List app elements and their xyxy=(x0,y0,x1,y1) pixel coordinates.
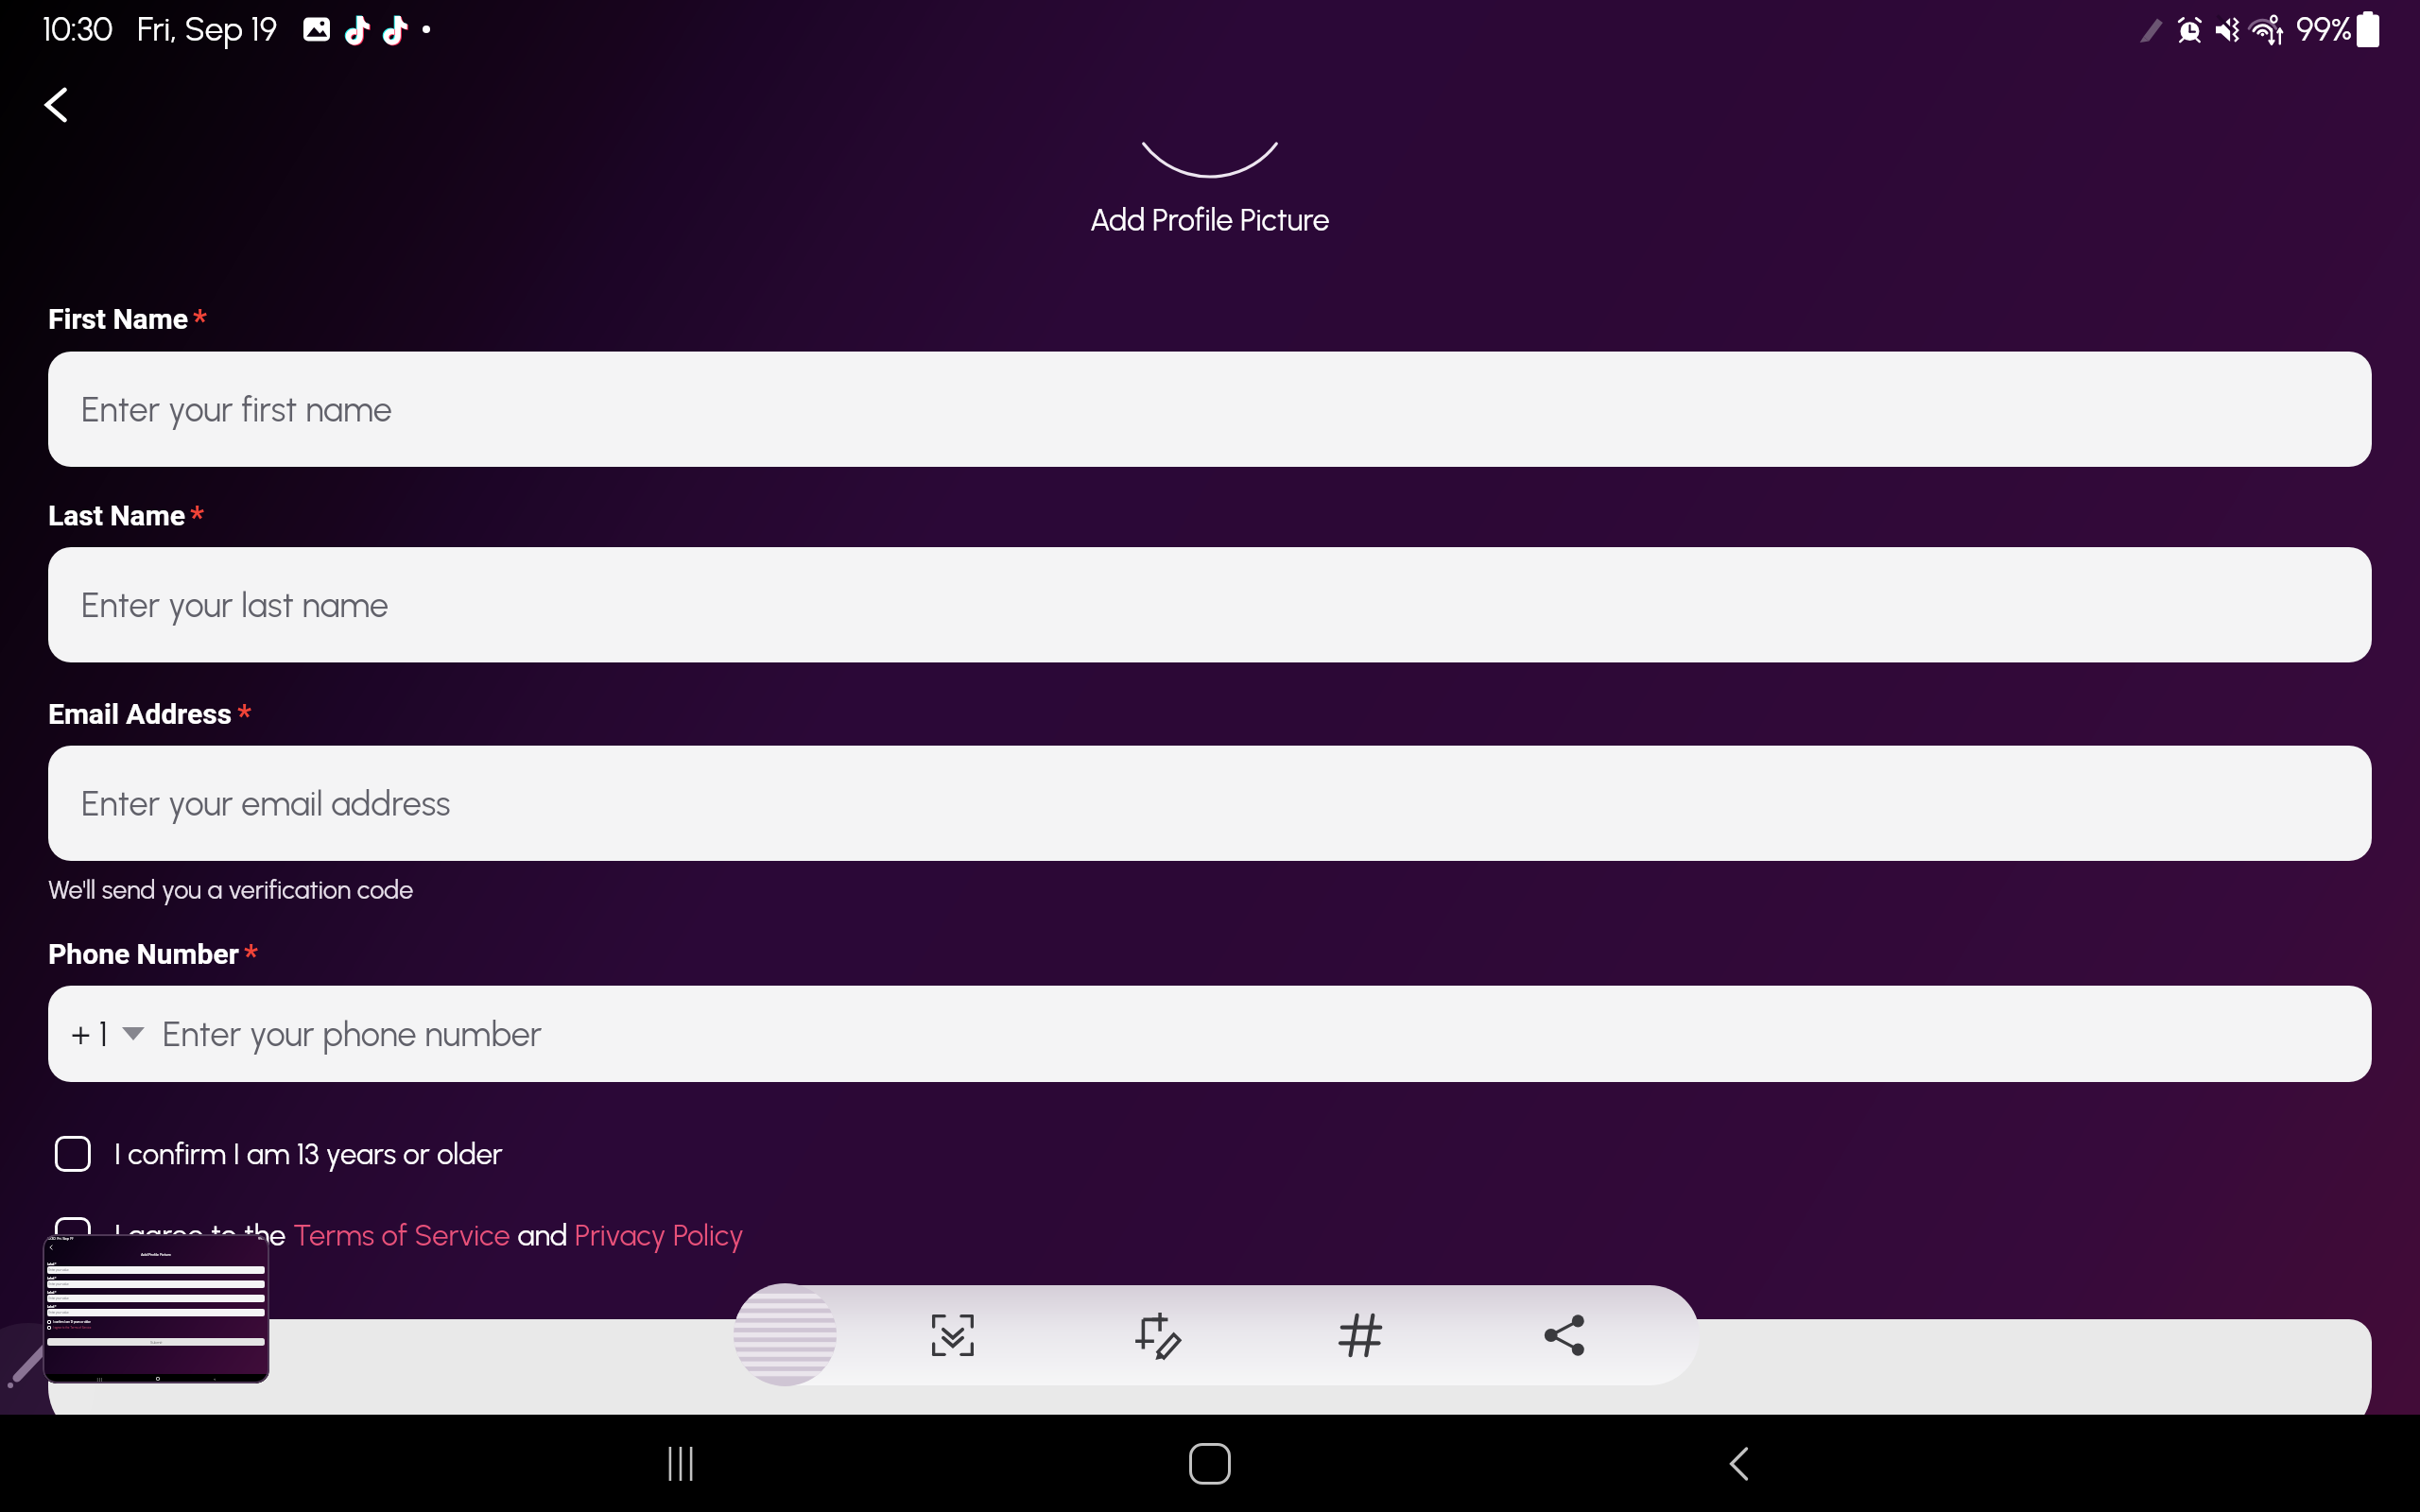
button[interactable]: Share xyxy=(1516,1287,1613,1383)
staticText: 10:30 Fri, Sep 19 xyxy=(47,1236,74,1241)
staticText: Enter your value xyxy=(47,1311,69,1314)
staticText: and xyxy=(510,1218,575,1253)
staticText: First Name xyxy=(48,302,188,335)
button[interactable]: Screenshot thumbnail xyxy=(43,1234,269,1383)
button[interactable]: Back xyxy=(18,66,95,144)
staticText: 10:30 xyxy=(43,9,113,49)
staticText: < xyxy=(214,1377,216,1382)
button[interactable]: Enter your email address xyxy=(48,746,2372,861)
staticText: * xyxy=(190,499,204,536)
staticText: Label * xyxy=(47,1277,57,1280)
button[interactable]: Recents xyxy=(641,1424,720,1503)
button[interactable]: Tags xyxy=(1313,1287,1409,1383)
staticText: Fri, Sep 19 xyxy=(137,9,278,49)
staticText: 99% xyxy=(258,1236,265,1241)
button[interactable]: Add profile picture xyxy=(1127,10,1293,177)
button[interactable]: Terms of Service xyxy=(293,1218,510,1253)
staticText: + 1 xyxy=(71,1014,109,1055)
staticText: Enter your value xyxy=(47,1297,69,1300)
staticText: Enter your value xyxy=(47,1282,69,1286)
button[interactable]: Privacy Policy xyxy=(575,1218,744,1253)
button[interactable]: Scroll capture xyxy=(905,1287,1001,1383)
staticText: Submit xyxy=(150,1340,163,1345)
button[interactable]: + 1 xyxy=(48,986,2372,1082)
staticText: * xyxy=(237,697,251,734)
staticText: Add Profile Picture xyxy=(141,1252,171,1257)
button[interactable]: Enter your last name xyxy=(48,547,2372,662)
button[interactable]: Back xyxy=(1700,1424,1779,1503)
staticText: Enter your phone number xyxy=(163,1014,543,1055)
staticText: Label * xyxy=(47,1305,57,1309)
staticText: Last Name xyxy=(48,499,185,532)
staticText: ||| xyxy=(96,1377,103,1382)
staticText: We'll send you a verification code xyxy=(48,874,414,904)
staticText: I confirm I am 13 years or older xyxy=(53,1320,91,1324)
staticText: I confirm I am 13 years or older xyxy=(114,1137,503,1172)
staticText: Email Address xyxy=(48,697,233,730)
button[interactable]: Crop and edit xyxy=(1110,1287,1206,1383)
staticText: Label * xyxy=(47,1263,57,1266)
staticText: * xyxy=(193,302,207,339)
staticText: 99% xyxy=(2296,9,2353,49)
staticText: Enter your email address xyxy=(81,783,451,824)
staticText: Enter your value xyxy=(47,1268,69,1272)
staticText: * xyxy=(244,937,258,974)
staticText: Enter your last name xyxy=(81,585,389,626)
staticText: Add Profile Picture xyxy=(1090,202,1330,238)
staticText: Label * xyxy=(47,1291,57,1295)
button[interactable]: I confirm I am 13 years or older xyxy=(55,1136,503,1172)
button[interactable]: Enter your first name xyxy=(48,352,2372,467)
staticText: Phone Number xyxy=(48,937,239,971)
staticText: Enter your first name xyxy=(81,389,392,430)
button[interactable]: I agree to the xyxy=(55,1217,744,1253)
staticText: I agree to the Terms of Service xyxy=(53,1326,92,1330)
button[interactable]: Home xyxy=(1170,1424,1250,1503)
staticText: I agree to the xyxy=(114,1218,293,1253)
button[interactable]: Screenshot preview xyxy=(734,1283,837,1386)
